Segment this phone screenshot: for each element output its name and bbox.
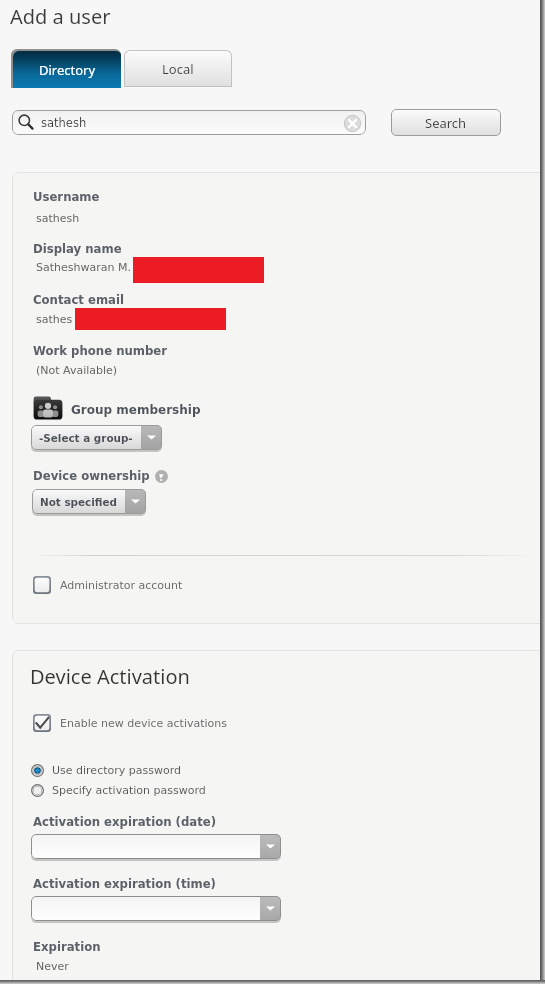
staticText: Display name: [33, 242, 122, 256]
button[interactable]: Not specified: [32, 489, 146, 514]
button[interactable]: Directory: [11, 49, 121, 88]
staticText: Not specified: [40, 496, 117, 508]
button[interactable]: Search: [391, 109, 501, 136]
staticText: Use directory password: [52, 764, 181, 777]
staticText: Device ownership: [33, 469, 150, 483]
button[interactable]: -Select a group-: [31, 425, 162, 450]
staticText: Satheshwaran M.: [36, 261, 131, 274]
button[interactable]: Local: [124, 50, 232, 87]
staticText: Enable new device activations: [60, 717, 228, 730]
staticText: Search: [425, 114, 467, 132]
button[interactable]: sathesh: [12, 110, 366, 135]
button[interactable]: Use directory password: [31, 764, 181, 777]
staticText: Administrator account: [60, 579, 183, 592]
staticText: sathesh: [36, 212, 80, 225]
staticText: Specify activation password: [52, 784, 206, 797]
staticText: Add a user: [10, 3, 111, 30]
staticText: (Not Available): [36, 364, 118, 377]
staticText: Work phone number: [33, 344, 168, 358]
staticText: Expiration: [33, 940, 101, 954]
button[interactable]: Specify activation password: [31, 784, 206, 797]
button[interactable]: [31, 896, 281, 921]
staticText: Activation expiration (date): [33, 815, 217, 829]
staticText: Local: [162, 60, 194, 78]
staticText: Group membership: [71, 403, 201, 417]
button[interactable]: Enable new device activations: [33, 714, 228, 732]
staticText: sathes: [36, 313, 73, 326]
button[interactable]: Help: [154, 469, 168, 483]
button[interactable]: Administrator account: [33, 576, 183, 594]
staticText: sathesh: [41, 116, 87, 129]
staticText: Directory: [39, 61, 96, 79]
staticText: Username: [33, 190, 100, 204]
staticText: Activation expiration (time): [33, 877, 216, 891]
button[interactable]: [31, 834, 281, 859]
staticText: Device Activation: [30, 663, 190, 690]
button[interactable]: Clear search: [343, 114, 361, 132]
staticText: Never: [36, 960, 69, 973]
staticText: Contact email: [33, 293, 124, 307]
staticText: -Select a group-: [39, 432, 133, 444]
